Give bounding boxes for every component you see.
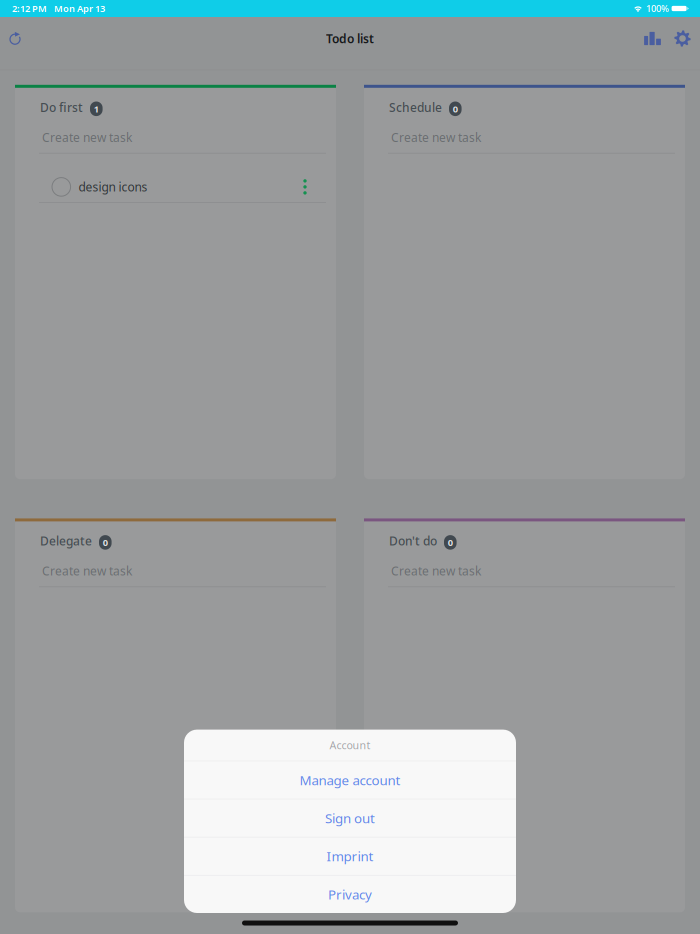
staticText: Create new task xyxy=(391,129,481,145)
staticText: 0 xyxy=(448,536,453,549)
button[interactable]: Sign out xyxy=(184,799,516,837)
staticText: Imprint xyxy=(326,847,373,865)
button[interactable]: Create new task xyxy=(15,118,336,154)
staticText: Todo list xyxy=(326,30,374,46)
button[interactable]: Manage account xyxy=(184,761,516,799)
staticText: 0 xyxy=(103,536,108,549)
staticText: Delegate xyxy=(40,533,92,549)
staticText: Sign out xyxy=(325,809,375,827)
button[interactable]: Task options xyxy=(291,172,319,202)
staticText: design icons xyxy=(79,179,148,195)
button[interactable]: Create new task xyxy=(15,551,336,587)
staticText: Create new task xyxy=(42,563,132,579)
staticText: Account xyxy=(329,738,370,752)
staticText: Privacy xyxy=(328,885,372,903)
button[interactable]: Create new task xyxy=(364,551,685,587)
button[interactable]: Imprint xyxy=(184,837,516,875)
staticText: Mon Apr 13 xyxy=(54,2,105,15)
button[interactable]: Refresh xyxy=(0,23,30,53)
staticText: Schedule xyxy=(389,99,442,115)
staticText: 0 xyxy=(453,103,458,115)
button[interactable]: Create new task xyxy=(364,118,685,154)
button[interactable]: Mark complete xyxy=(42,172,79,202)
button[interactable]: Privacy xyxy=(184,876,516,913)
staticText: Manage account xyxy=(299,771,400,789)
staticText: Create new task xyxy=(42,129,132,145)
staticText: Create new task xyxy=(391,563,481,579)
staticText: Do first xyxy=(40,99,83,115)
staticText: 2:12 PM xyxy=(12,2,47,15)
staticText: Don't do xyxy=(389,533,437,549)
button[interactable]: Settings xyxy=(669,23,696,53)
button[interactable]: Statistics xyxy=(639,23,666,53)
staticText: 1 xyxy=(94,103,99,115)
staticText: 100% xyxy=(646,2,669,15)
